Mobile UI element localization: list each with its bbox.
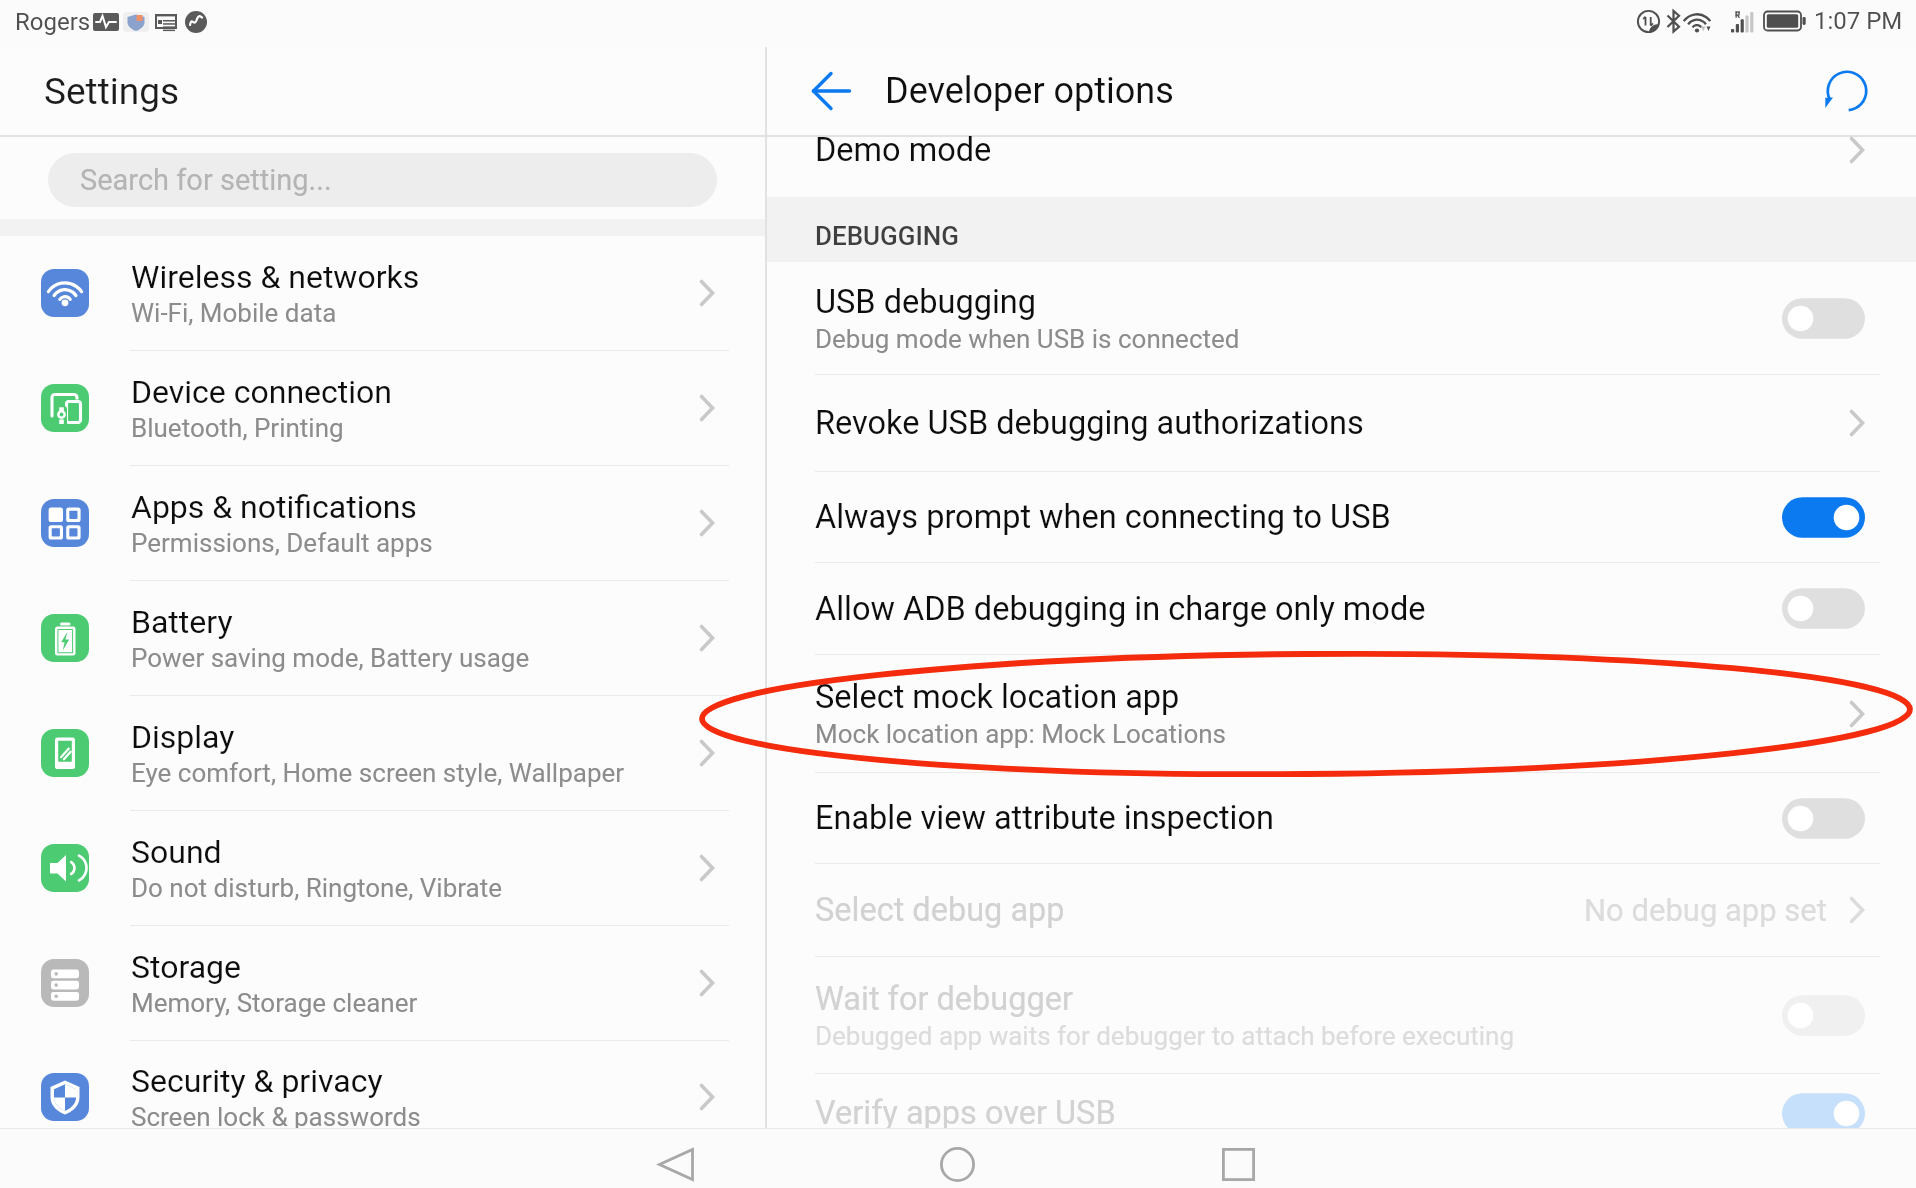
button[interactable]: Revoke USB debugging authorizations [767,375,1916,471]
button[interactable]: Demo mode [767,137,1916,197]
staticText: No debug app set [1584,892,1827,928]
button[interactable]: Off [1782,995,1873,1036]
staticText: Debug mode when USB is connected [815,324,1240,354]
staticText: Select debug app [815,891,1065,929]
button[interactable]: Verify apps over USB [767,1074,1916,1128]
button[interactable]: Allow ADB debugging in charge only mode [767,563,1916,654]
staticText: Memory, Storage cleaner [131,988,418,1018]
staticText: 1:07 PM [1814,7,1903,35]
button[interactable]: Home [921,1135,993,1188]
staticText: USB debugging [815,283,1037,321]
staticText: Demo mode [815,131,992,169]
staticText: Verify apps over USB [815,1094,1116,1132]
button[interactable]: Battery [0,581,765,695]
button[interactable]: Select debug app [767,864,1916,956]
button[interactable]: Reset to defaults [1816,60,1878,122]
staticText: Permissions, Default apps [131,528,433,558]
button[interactable]: Enable view attribute inspection [767,773,1916,863]
staticText: Mock location app: Mock Locations [815,719,1226,749]
button[interactable]: Off [1782,798,1873,839]
staticText: Search for setting... [80,163,332,197]
staticText: Storage [131,948,241,986]
staticText: Select mock location app [815,678,1180,716]
staticText: Revoke USB debugging authorizations [815,404,1364,442]
button[interactable]: Off [1782,298,1873,339]
staticText: Power saving mode, Battery usage [131,643,530,673]
button[interactable]: Sound [0,811,765,925]
staticText: Do not disturb, Ringtone, Vibrate [131,873,503,903]
button[interactable]: Search for setting... [48,153,717,207]
button[interactable]: Select mock location app [767,655,1916,772]
staticText: Rogers [15,8,91,36]
staticText: Wi-Fi, Mobile data [131,298,337,328]
staticText: Allow ADB debugging in charge only mode [815,590,1426,628]
staticText: Debugged app waits for debugger to attac… [815,1021,1515,1051]
button[interactable]: On [1782,497,1873,538]
staticText: Battery [131,603,233,641]
button[interactable]: Storage [0,926,765,1040]
button[interactable]: Display [0,696,765,810]
staticText: Apps & notifications [131,488,417,526]
staticText: DEBUGGING [815,221,960,251]
button[interactable]: Apps & notifications [0,466,765,580]
button[interactable]: Off [1782,588,1873,629]
staticText: Always prompt when connecting to USB [815,498,1391,536]
button[interactable]: Back [640,1135,712,1188]
staticText: Bluetooth, Printing [131,413,344,443]
button[interactable]: Device connection [0,351,765,465]
button[interactable]: USB debugging [767,262,1916,374]
button[interactable]: Always prompt when connecting to USB [767,472,1916,562]
staticText: Wait for debugger [815,980,1073,1018]
button[interactable]: On [1782,1093,1873,1134]
button[interactable]: Back [802,62,860,120]
staticText: Settings [44,70,180,113]
staticText: Display [131,718,235,756]
staticText: Screen lock & passwords [131,1102,421,1132]
staticText: Sound [131,833,222,871]
button[interactable]: Security & privacy [0,1041,765,1128]
button[interactable]: Recents [1202,1135,1274,1188]
staticText: Wireless & networks [131,258,420,296]
button[interactable]: Wireless & networks [0,236,765,350]
staticText: Device connection [131,373,392,411]
staticText: Eye comfort, Home screen style, Wallpape… [131,758,625,788]
button[interactable]: Wait for debugger [767,957,1916,1073]
staticText: Developer options [885,70,1174,112]
staticText: Enable view attribute inspection [815,799,1274,837]
staticText: Security & privacy [131,1062,383,1100]
